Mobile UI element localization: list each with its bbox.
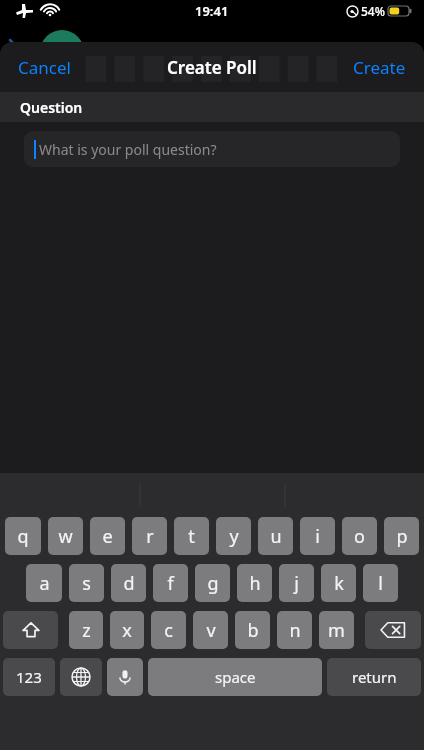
button[interactable]: n xyxy=(277,611,312,649)
staticText: r xyxy=(146,524,154,549)
button[interactable]: p xyxy=(384,517,419,555)
staticText: 123 xyxy=(16,667,42,687)
button[interactable]: r xyxy=(132,517,167,555)
staticText: k xyxy=(334,571,344,596)
staticText: t xyxy=(188,524,195,549)
button[interactable]: m xyxy=(319,611,354,649)
staticText: e xyxy=(102,524,113,549)
button[interactable]: f xyxy=(153,564,188,602)
button[interactable]: Shift xyxy=(3,611,58,649)
button[interactable]: space xyxy=(148,658,322,696)
button[interactable]: x xyxy=(110,611,144,649)
button[interactable]: e xyxy=(90,517,125,555)
button[interactable]: w xyxy=(48,517,83,555)
button[interactable]: b xyxy=(235,611,270,649)
staticText: b xyxy=(247,618,259,643)
staticText: Create Poll xyxy=(167,56,257,79)
staticText: c xyxy=(164,618,173,643)
staticText: h xyxy=(249,571,261,596)
staticText: a xyxy=(39,571,50,596)
staticText: v xyxy=(206,618,216,643)
button[interactable]: Create xyxy=(335,46,424,89)
staticText: s xyxy=(82,571,91,596)
staticText: n xyxy=(289,618,301,643)
staticText: f xyxy=(167,571,174,596)
button[interactable]: h xyxy=(237,564,272,602)
staticText: p xyxy=(396,524,408,549)
button[interactable]: t xyxy=(174,517,209,555)
staticText: return xyxy=(352,667,397,687)
staticText: What is your poll question? xyxy=(39,140,217,159)
button[interactable]: z xyxy=(69,611,103,649)
button[interactable]: Dictation xyxy=(107,658,143,696)
staticText: g xyxy=(207,571,219,596)
staticText: i xyxy=(315,524,320,549)
staticText: q xyxy=(17,524,29,549)
button[interactable]: g xyxy=(195,564,230,602)
staticText: o xyxy=(354,524,365,549)
button[interactable]: s xyxy=(69,564,104,602)
button[interactable]: l xyxy=(363,564,398,602)
button[interactable]: return xyxy=(327,658,421,696)
button[interactable]: y xyxy=(216,517,251,555)
button[interactable]: a xyxy=(26,564,62,602)
button[interactable]: i xyxy=(300,517,335,555)
button[interactable]: v xyxy=(193,611,228,649)
staticText: Create xyxy=(353,56,406,79)
button[interactable]: j xyxy=(279,564,314,602)
button[interactable]: u xyxy=(258,517,293,555)
button[interactable]: o xyxy=(342,517,377,555)
staticText: z xyxy=(82,618,91,643)
button[interactable]: q xyxy=(5,517,41,555)
staticText: l xyxy=(378,571,383,596)
button[interactable]: Cancel xyxy=(0,46,89,89)
button[interactable]: k xyxy=(321,564,356,602)
button[interactable]: c xyxy=(151,611,186,649)
staticText: d xyxy=(123,571,135,596)
staticText: m xyxy=(328,618,345,643)
staticText: j xyxy=(294,571,299,596)
staticText: y xyxy=(229,524,239,549)
staticText: Question xyxy=(20,98,83,117)
staticText: Cancel xyxy=(18,56,71,79)
button[interactable]: What is your poll question? xyxy=(24,131,400,167)
staticText: u xyxy=(270,524,282,549)
button[interactable]: Backspace xyxy=(365,611,421,649)
staticText: x xyxy=(122,618,132,643)
button[interactable]: 123 xyxy=(3,658,55,696)
staticText: 19:41 xyxy=(195,2,229,20)
staticText: 54% xyxy=(361,3,385,19)
button[interactable]: Change keyboard xyxy=(60,658,102,696)
button[interactable]: d xyxy=(111,564,146,602)
staticText: w xyxy=(58,524,73,549)
staticText: space xyxy=(215,667,256,687)
